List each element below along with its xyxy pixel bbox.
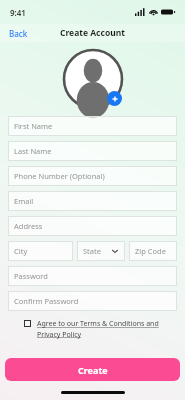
button[interactable]: Add profile photo [62,48,124,110]
button[interactable]: Password [8,266,177,286]
button[interactable]: Add photo [107,91,122,106]
button[interactable]: Address [8,216,177,236]
staticText: Zip Code [135,246,166,256]
button[interactable]: Agree to our Terms & Conditions and Priv… [24,319,171,339]
button[interactable]: Last Name [8,141,177,161]
staticText: Create [78,364,108,376]
staticText: Email [14,196,34,206]
staticText: Address [14,221,43,231]
staticText: Back [9,28,28,39]
staticText: Password [14,271,48,281]
button[interactable]: Create [5,358,180,381]
staticText: First Name [14,121,53,131]
staticText: 9:41 [10,7,26,18]
staticText: Last Name [14,146,52,156]
button[interactable]: Zip Code [129,241,177,261]
button[interactable]: Phone Number (Optional) [8,166,177,186]
staticText: City [14,246,28,256]
button[interactable]: Confirm Password [8,291,177,311]
staticText: Phone Number (Optional) [14,171,105,181]
button[interactable]: Email [8,191,177,211]
staticText: Agree to our Terms & Conditions and Priv… [37,319,171,339]
staticText: Create Account [60,27,125,39]
staticText: State [83,246,101,256]
button[interactable]: First Name [8,116,177,136]
staticText: Confirm Password [14,296,79,306]
button[interactable]: State [77,241,125,261]
button[interactable]: City [8,241,73,261]
button[interactable]: Back [0,25,37,42]
